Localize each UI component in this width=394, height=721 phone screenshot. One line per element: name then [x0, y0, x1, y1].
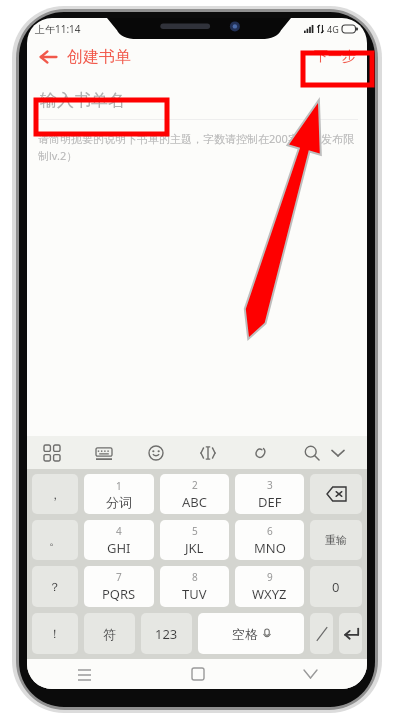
staticText: 上午11:14 — [35, 22, 81, 36]
staticText: 7 — [116, 570, 122, 584]
button[interactable]: 下一步 — [314, 48, 356, 66]
staticText: 下一步 — [314, 48, 356, 66]
button[interactable]: Emoji — [143, 440, 169, 466]
button[interactable]: ， — [32, 474, 78, 514]
staticText: 分词 — [106, 494, 132, 510]
staticText: 5 — [192, 524, 198, 538]
button[interactable]: 输入书单名 — [27, 81, 367, 119]
button[interactable]: 。 — [32, 520, 78, 560]
button[interactable]: Switch language — [310, 613, 333, 654]
staticText: 创建书单 — [67, 47, 131, 67]
staticText: 输入书单名 — [40, 90, 125, 111]
button[interactable]: ？ — [32, 566, 78, 607]
button[interactable]: Keyboard — [91, 440, 117, 466]
button[interactable]: 符 — [84, 613, 135, 654]
button[interactable]: 重输 — [310, 520, 362, 560]
button[interactable]: 0 — [310, 566, 362, 607]
staticText: 4 — [116, 524, 122, 538]
staticText: MNO — [254, 539, 286, 557]
staticText: 符 — [103, 626, 116, 642]
staticText: JKL — [185, 539, 204, 557]
button[interactable]: Move cursor — [195, 440, 221, 466]
button[interactable]: 空格 — [198, 613, 304, 654]
button[interactable]: 5 — [160, 520, 229, 560]
staticText: 3 — [267, 478, 273, 492]
staticText: ！ — [49, 626, 61, 641]
staticText: 请简明扼要的说明下书单的主题，字数请控制在200字以（发布限制lv.2） — [38, 131, 356, 164]
staticText: 123 — [155, 625, 178, 643]
other: Back — [36, 45, 60, 69]
button[interactable]: Keyboard layouts — [39, 440, 65, 466]
button[interactable]: 1 — [84, 474, 154, 514]
staticText: 0 — [332, 578, 340, 596]
button[interactable]: 9 — [235, 566, 304, 607]
staticText: WXYZ — [252, 585, 287, 603]
button[interactable]: Back — [254, 659, 367, 689]
button[interactable]: 4 — [84, 520, 154, 560]
staticText: ， — [49, 487, 61, 502]
staticText: 9 — [267, 570, 273, 584]
staticText: 6 — [267, 524, 273, 538]
button[interactable]: Delete — [310, 474, 362, 514]
button[interactable]: 123 — [141, 613, 192, 654]
staticText: PQRS — [102, 585, 136, 603]
button[interactable]: 7 — [84, 566, 154, 607]
button[interactable]: Enter — [339, 613, 362, 654]
staticText: TUV — [182, 585, 207, 603]
button[interactable]: 请简明扼要的说明下书单的主题，字数请控制在200字以（发布限制lv.2） — [38, 131, 356, 164]
button[interactable]: Attachment — [247, 440, 273, 466]
staticText: 1 — [116, 479, 122, 493]
button[interactable]: Home — [141, 659, 254, 689]
button[interactable]: 6 — [235, 520, 304, 560]
button[interactable]: Hide keyboard — [325, 440, 351, 466]
button[interactable]: 2 — [160, 474, 229, 514]
staticText: 重输 — [325, 533, 347, 547]
button[interactable]: ！ — [32, 613, 78, 654]
button[interactable]: Back — [36, 45, 131, 69]
staticText: 4G — [327, 23, 339, 35]
button[interactable]: 3 — [235, 474, 304, 514]
button[interactable]: 8 — [160, 566, 229, 607]
staticText: DEF — [258, 493, 282, 511]
staticText: 2 — [192, 478, 198, 492]
staticText: 空格 — [232, 626, 258, 642]
staticText: 8 — [192, 570, 198, 584]
staticText: 。 — [49, 533, 61, 548]
staticText: ABC — [182, 493, 207, 511]
button[interactable]: Search — [299, 440, 325, 466]
staticText: GHI — [107, 539, 131, 557]
button[interactable]: Recents — [27, 659, 141, 689]
staticText: ？ — [49, 579, 61, 594]
